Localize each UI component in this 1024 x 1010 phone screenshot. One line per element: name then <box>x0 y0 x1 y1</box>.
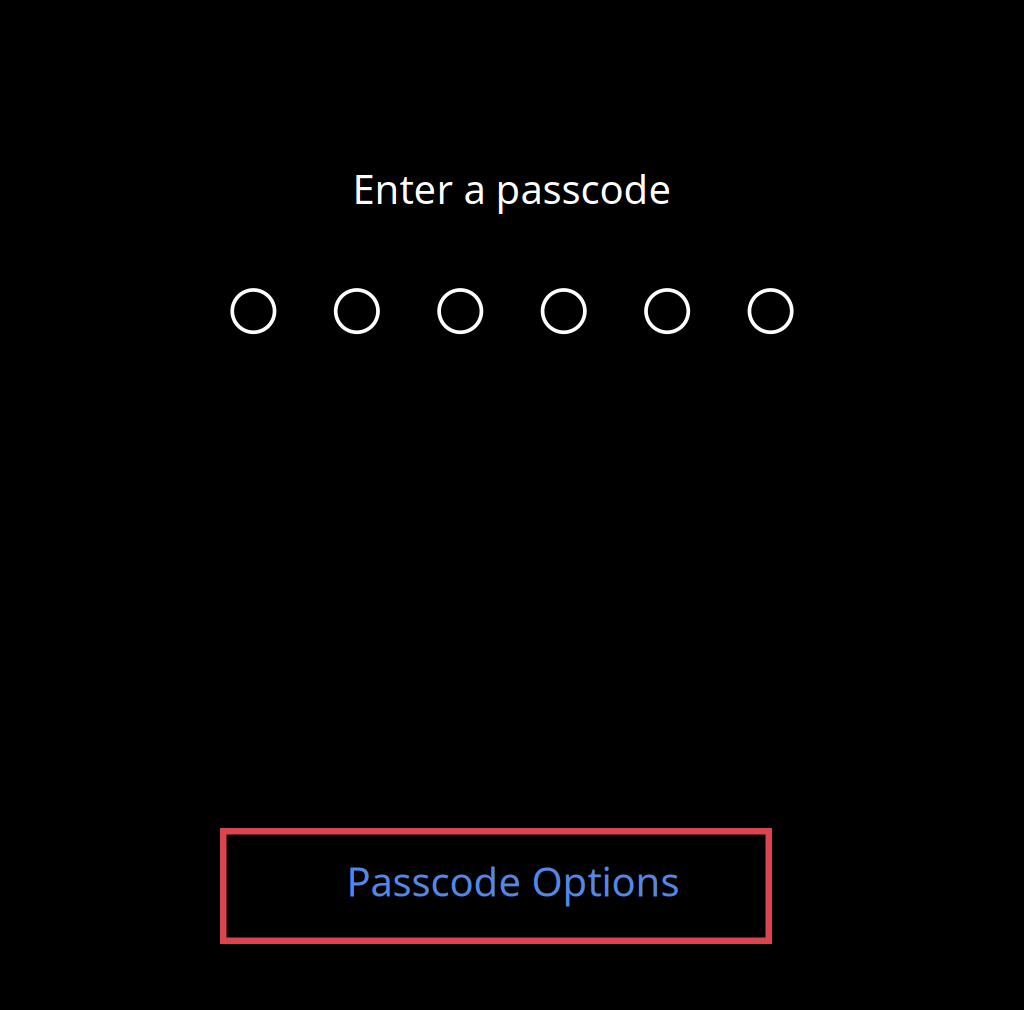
button[interactable]: Passcode Options <box>220 828 772 944</box>
staticText: Passcode Options <box>346 854 679 907</box>
staticText: Enter a passcode <box>352 162 671 215</box>
